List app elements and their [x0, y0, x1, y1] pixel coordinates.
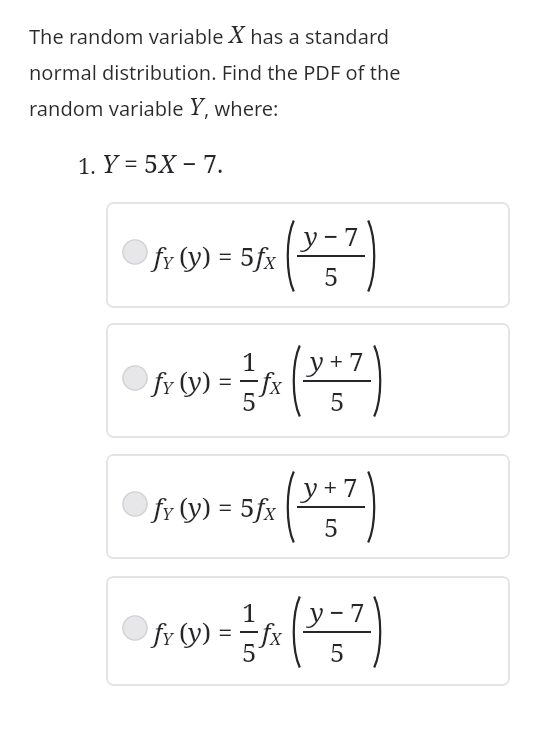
staticText: f: [256, 238, 265, 273]
staticText: 5: [240, 489, 255, 524]
staticText: −: [323, 218, 339, 253]
staticText: random variable: [29, 95, 189, 122]
button[interactable]: Select answer: [106, 454, 510, 559]
staticText: 5: [242, 634, 257, 669]
staticText: Y: [162, 376, 173, 399]
staticText: (: [179, 238, 188, 273]
other: Select answer: [122, 615, 148, 641]
staticText: , where:: [204, 95, 279, 122]
staticText: Y: [189, 90, 204, 121]
staticText: y: [304, 469, 318, 504]
staticText: 7: [349, 343, 364, 378]
staticText: 7.: [203, 146, 224, 180]
staticText: 7: [343, 469, 358, 504]
staticText: y: [188, 489, 202, 524]
staticText: ): [202, 489, 211, 524]
staticText: Y: [162, 627, 173, 650]
staticText: 1: [242, 594, 257, 629]
other: Select answer: [122, 491, 148, 517]
staticText: Y: [162, 251, 173, 274]
staticText: 5: [240, 238, 255, 273]
staticText: f: [256, 489, 265, 524]
staticText: ): [202, 363, 211, 398]
staticText: 5: [330, 383, 345, 418]
staticText: (: [179, 489, 188, 524]
staticText: ): [202, 614, 211, 649]
other: Select answer: [122, 365, 148, 391]
staticText: y: [188, 614, 202, 649]
staticText: f: [154, 614, 163, 649]
staticText: 1: [242, 343, 257, 378]
button[interactable]: Select answer: [106, 323, 510, 438]
staticText: 7: [350, 594, 365, 629]
staticText: 7: [344, 218, 359, 253]
staticText: X: [270, 627, 282, 650]
staticText: y: [310, 594, 324, 629]
staticText: f: [154, 238, 163, 273]
staticText: 5: [324, 258, 339, 293]
staticText: has a standard: [245, 23, 390, 50]
button[interactable]: Select answer: [106, 202, 510, 308]
staticText: X: [270, 376, 282, 399]
button[interactable]: Select answer: [106, 576, 510, 686]
staticText: (: [179, 363, 188, 398]
staticText: 5: [242, 383, 257, 418]
staticText: 5: [324, 509, 339, 544]
staticText: +: [323, 469, 338, 504]
staticText: =: [218, 489, 233, 524]
staticText: X: [264, 502, 276, 525]
staticText: =: [218, 614, 233, 649]
staticText: +: [329, 343, 344, 378]
staticText: f: [262, 614, 271, 649]
staticText: X: [264, 251, 276, 274]
staticText: 1.: [78, 150, 96, 180]
staticText: Y: [102, 146, 118, 180]
staticText: =: [124, 146, 138, 180]
staticText: 5: [330, 634, 345, 669]
staticText: The random variable: [29, 23, 229, 50]
staticText: y: [310, 343, 324, 378]
staticText: −: [182, 146, 197, 180]
staticText: =: [218, 363, 233, 398]
staticText: X: [159, 146, 176, 180]
staticText: X: [229, 18, 245, 49]
staticText: (: [179, 614, 188, 649]
staticText: y: [188, 363, 202, 398]
staticText: 5: [144, 146, 159, 180]
staticText: =: [218, 238, 233, 273]
staticText: f: [262, 363, 271, 398]
staticText: y: [188, 238, 202, 273]
staticText: normal distribution. Find the PDF of the: [29, 59, 401, 86]
staticText: y: [304, 218, 318, 253]
staticText: f: [154, 363, 163, 398]
staticText: f: [154, 489, 163, 524]
staticText: −: [329, 594, 345, 629]
staticText: Y: [162, 502, 173, 525]
other: Select answer: [122, 239, 148, 265]
staticText: ): [202, 238, 211, 273]
